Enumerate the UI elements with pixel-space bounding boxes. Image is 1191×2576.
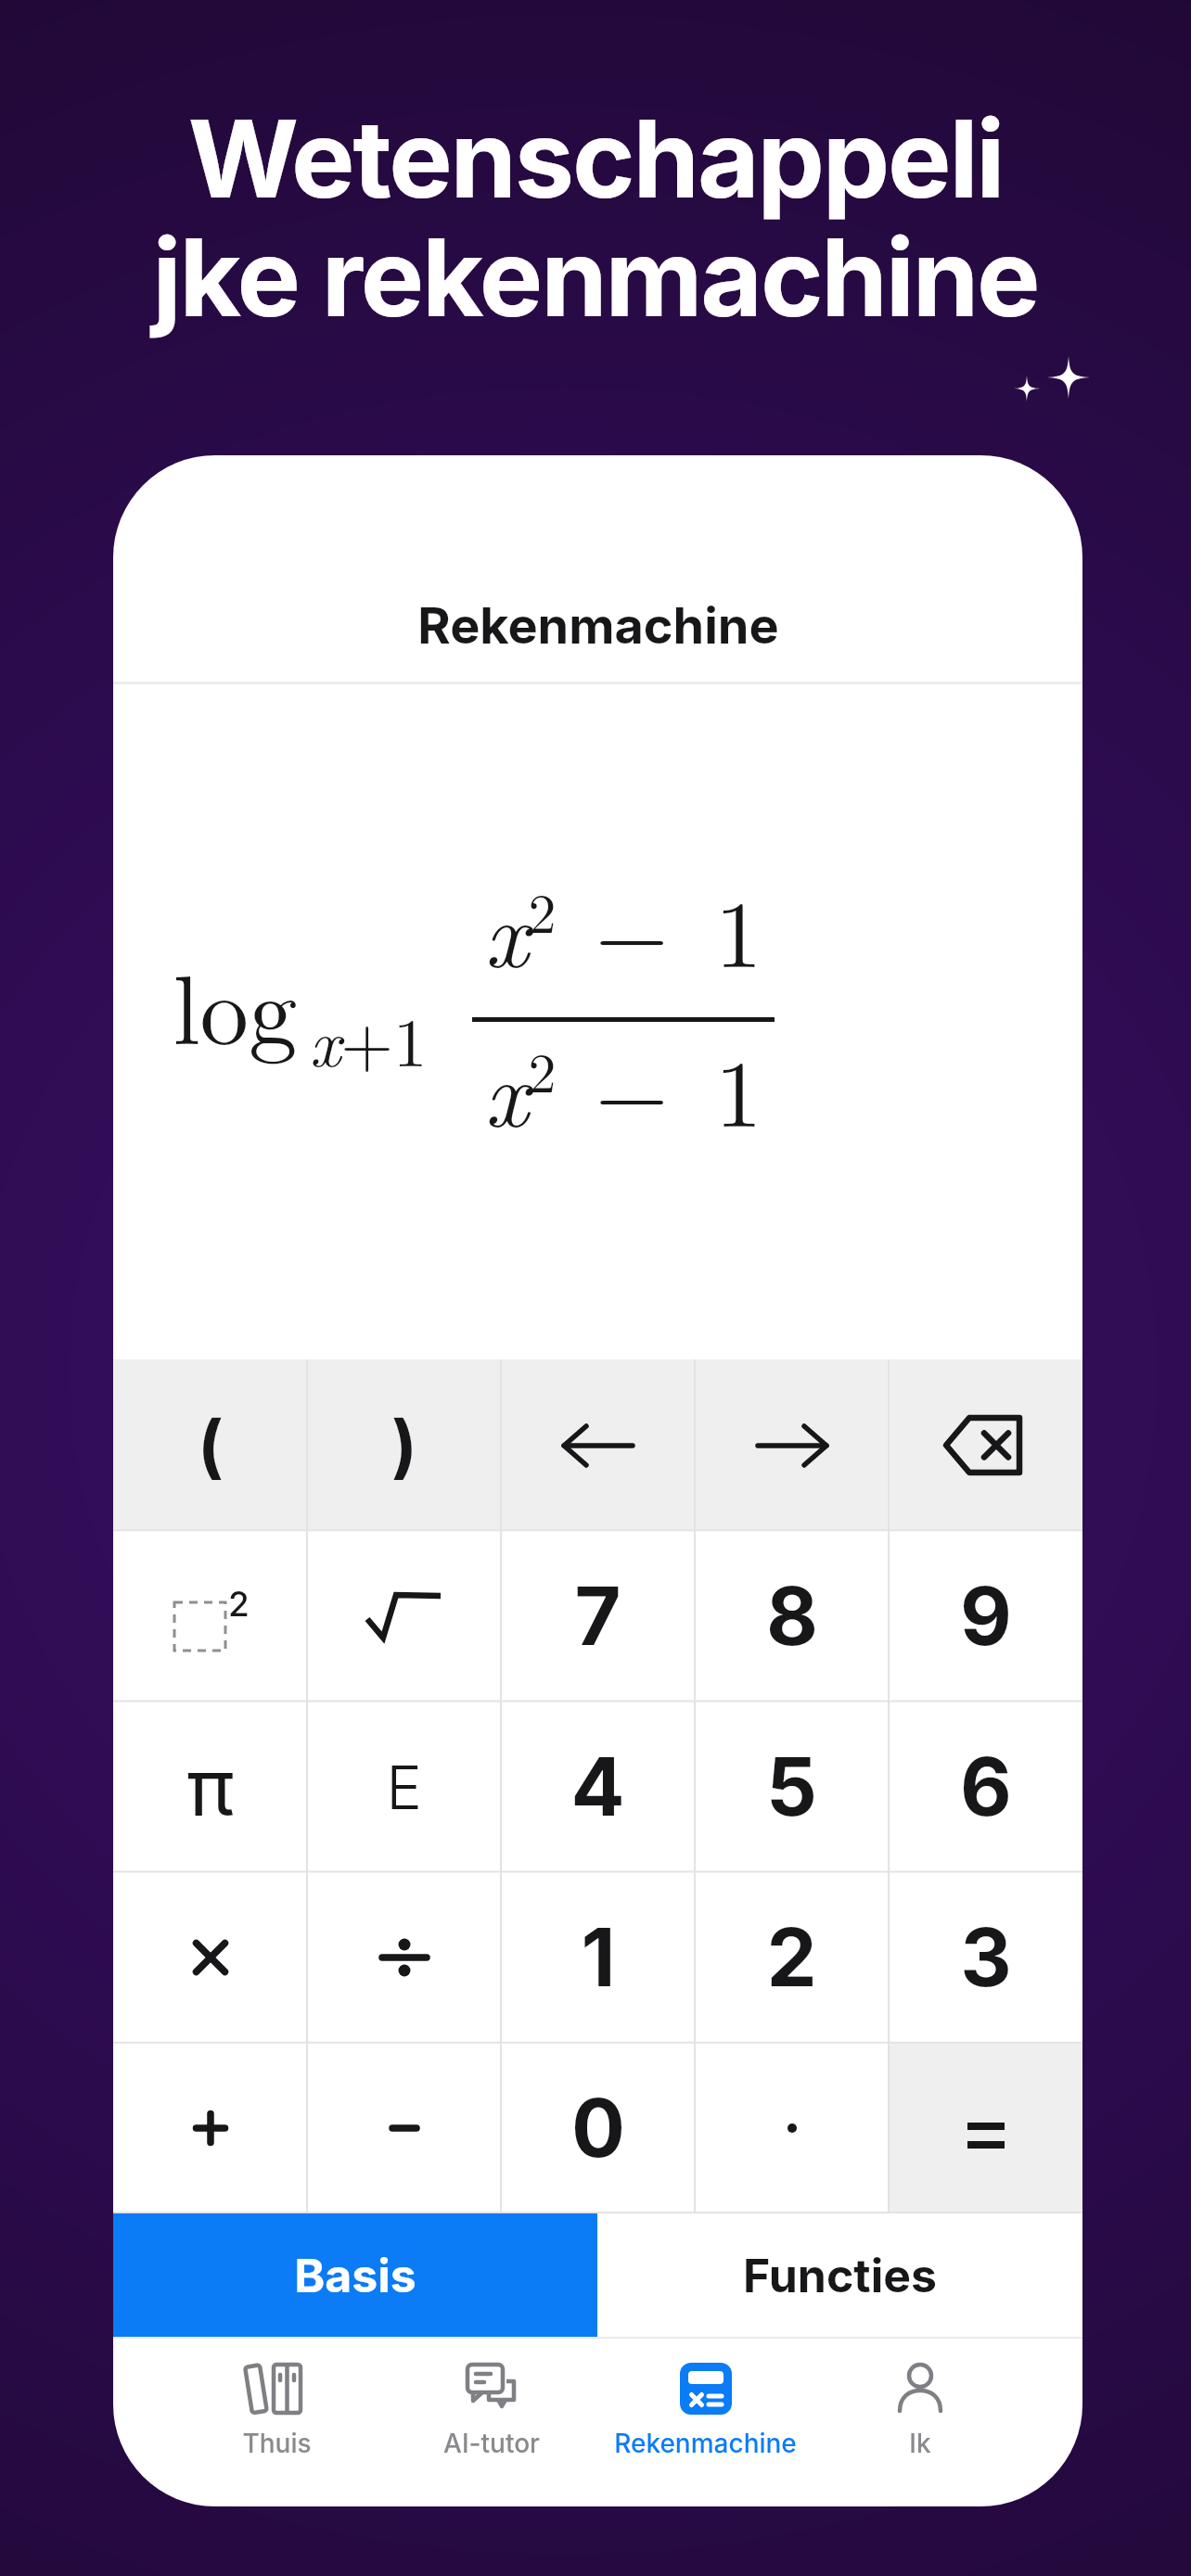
button[interactable]: (	[113, 1359, 307, 1531]
button[interactable]: Thuis	[169, 2363, 384, 2506]
button[interactable]: 0	[501, 2043, 695, 2213]
staticText: log	[173, 935, 298, 1073]
button[interactable]: 6	[889, 1702, 1082, 1872]
button[interactable]: 8	[695, 1531, 889, 1702]
button[interactable]: Functies	[597, 2213, 1082, 2337]
staticText: π	[186, 1740, 235, 1835]
staticText: x+1	[309, 990, 428, 1086]
staticText: Rekenmachine	[417, 595, 779, 656]
staticText: E	[386, 1751, 422, 1824]
button[interactable]: 3	[889, 1872, 1082, 2043]
staticText: 7	[574, 1568, 621, 1664]
button[interactable]: E	[307, 1702, 501, 1872]
button[interactable]	[307, 1872, 501, 2043]
staticText: AI-tutor	[443, 2428, 540, 2459]
staticText: 8	[766, 1568, 818, 1664]
staticText: x2 − 1	[484, 861, 762, 995]
button[interactable]	[307, 2043, 501, 2213]
button[interactable]	[113, 2043, 307, 2213]
button[interactable]: 4	[501, 1702, 695, 1872]
staticText: (	[198, 1404, 224, 1487]
button[interactable]	[501, 1359, 695, 1531]
staticText: 4	[570, 1739, 625, 1835]
button[interactable]: 1	[501, 1872, 695, 2043]
staticText: Rekenmachine	[614, 2428, 797, 2459]
button[interactable]: 2	[113, 1531, 307, 1702]
staticText: 0	[571, 2080, 625, 2176]
button[interactable]: Rekenmachine	[598, 2363, 813, 2506]
button[interactable]: 7	[501, 1531, 695, 1702]
button[interactable]: 2	[695, 1872, 889, 2043]
staticText: 6	[960, 1739, 1012, 1835]
staticText: Wetenschappeli jke rekenmachine	[0, 95, 1191, 341]
button[interactable]	[889, 2043, 1082, 2213]
staticText: 1	[581, 1909, 616, 2006]
staticText: )	[391, 1404, 417, 1487]
button[interactable]	[695, 2043, 889, 2213]
button[interactable]	[695, 1359, 889, 1531]
button[interactable]: 5	[695, 1702, 889, 1872]
button[interactable]	[307, 1531, 501, 1702]
staticText: 5	[766, 1739, 817, 1835]
staticText: 3	[960, 1909, 1012, 2006]
button[interactable]: 9	[889, 1531, 1082, 1702]
button[interactable]	[113, 1872, 307, 2043]
staticText: 2	[228, 1583, 250, 1625]
button[interactable]: AI-tutor	[384, 2363, 598, 2506]
button[interactable]: Basis	[113, 2213, 597, 2337]
button[interactable]: Ik	[813, 2363, 1027, 2506]
button[interactable]: )	[307, 1359, 501, 1531]
button[interactable]: π	[113, 1702, 307, 1872]
staticText: 2	[766, 1909, 817, 2006]
staticText: Ik	[909, 2428, 931, 2459]
staticText: Basis	[294, 2248, 416, 2303]
staticText: x2 − 1	[484, 1020, 762, 1154]
staticText: Functies	[743, 2248, 937, 2303]
button[interactable]	[889, 1359, 1082, 1531]
staticText: Thuis	[242, 2428, 312, 2459]
staticText: 9	[960, 1568, 1012, 1664]
